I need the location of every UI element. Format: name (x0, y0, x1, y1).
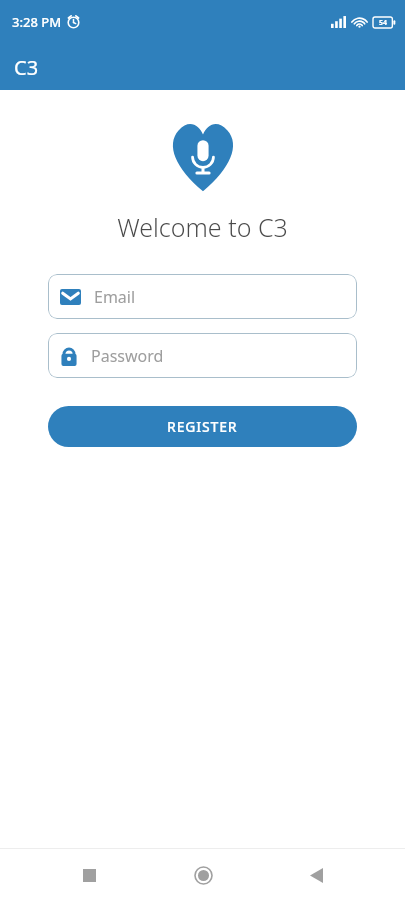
staticText: REGISTER (167, 417, 238, 436)
button[interactable]: Recent apps (65, 851, 113, 899)
staticText: Welcome to C3 (0, 210, 405, 244)
staticText: 3:28 PM (12, 13, 62, 31)
button[interactable]: Home (179, 851, 227, 899)
staticText: 54 (379, 18, 388, 28)
button[interactable]: Back (292, 851, 340, 899)
staticText: C3 (14, 54, 39, 81)
button[interactable]: Email (48, 274, 357, 319)
button[interactable]: Password (48, 333, 357, 378)
button[interactable]: REGISTER (48, 406, 357, 447)
staticText: Email (94, 286, 136, 308)
staticText: Password (91, 345, 164, 367)
